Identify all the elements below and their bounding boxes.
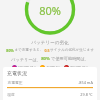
staticText: で使用可能時間は、 (50, 56, 89, 62)
button[interactable]: 80% (6, 48, 94, 53)
staticText: 4時間 9分 (46, 65, 61, 70)
staticText: -854 mA (78, 80, 93, 85)
button[interactable]: 温度 (7, 92, 93, 97)
staticText: 0.5 (44, 48, 50, 53)
staticText: バッテリーは、 (11, 57, 41, 62)
staticText: 80% (41, 56, 50, 62)
staticText: 80% (6, 48, 14, 53)
staticText: 温度 (7, 92, 15, 97)
button[interactable]: 18時間 24分 (12, 65, 37, 70)
staticText: 80% (39, 3, 61, 18)
button[interactable]: 70時間 33分 (64, 65, 89, 70)
staticText: 充電状況 (7, 70, 27, 76)
staticText: サイクルの劣化が生じます (50, 48, 94, 53)
staticText: 18時間 24分 (18, 65, 37, 70)
button[interactable]: 4時間 9分 (40, 65, 61, 70)
button[interactable]: 充電電圧 (7, 80, 93, 85)
staticText: まで充電すると、 (14, 48, 44, 53)
staticText: 29.8 ℃ (80, 92, 93, 97)
staticText: バッテリーの劣化 (31, 40, 69, 46)
staticText: 充電電圧 (7, 80, 23, 85)
staticText: 70時間 33分 (70, 65, 89, 70)
